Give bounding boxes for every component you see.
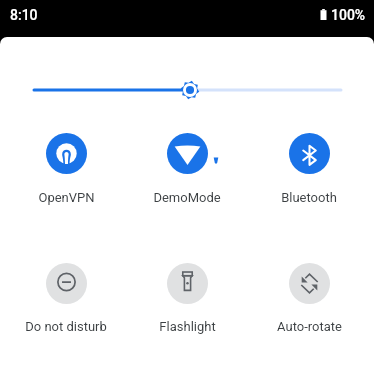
staticText: Bluetooth <box>281 190 337 205</box>
button[interactable]: DemoMode <box>128 133 246 205</box>
staticText: 100% <box>331 7 366 23</box>
staticText: Flashlight <box>159 319 216 334</box>
button[interactable]: OpenVPN <box>7 133 125 205</box>
staticText: DemoMode <box>153 190 221 205</box>
staticText: Do not disturb <box>25 319 107 334</box>
button[interactable]: Do not disturb <box>7 263 125 334</box>
staticText: Auto-rotate <box>277 319 342 334</box>
button[interactable]: Brightness <box>0 77 374 103</box>
button[interactable]: Auto-rotate <box>250 263 368 334</box>
button[interactable]: Flashlight <box>128 263 246 334</box>
staticText: OpenVPN <box>38 190 95 205</box>
staticText: 8:10 <box>10 7 38 23</box>
button[interactable]: Bluetooth <box>250 133 368 205</box>
